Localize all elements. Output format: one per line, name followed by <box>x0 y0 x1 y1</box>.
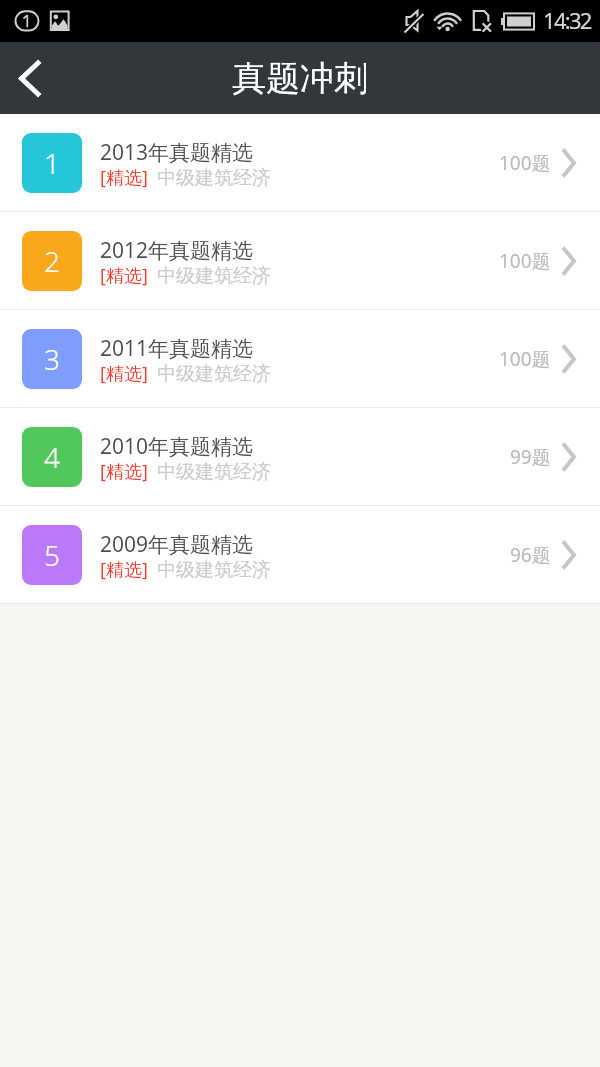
staticText: 2011年真题精选 <box>100 334 254 363</box>
staticText: 100题 <box>499 248 551 274</box>
staticText: 1 <box>44 144 60 182</box>
button[interactable]: 3 <box>0 310 600 407</box>
button[interactable]: 2 <box>0 212 600 309</box>
staticText: 14:32 <box>543 5 591 35</box>
staticText: 2009年真题精选 <box>100 530 254 559</box>
staticText: 2 <box>44 242 60 280</box>
staticText: 2012年真题精选 <box>100 236 254 265</box>
staticText: 2013年真题精选 <box>100 138 254 167</box>
staticText: 4 <box>44 438 60 476</box>
staticText: 5 <box>44 536 60 574</box>
button[interactable]: 5 <box>0 506 600 603</box>
staticText: [精选] <box>100 165 148 190</box>
staticText: 100题 <box>499 346 551 372</box>
staticText: [精选] <box>100 459 148 484</box>
staticText: 100题 <box>499 150 551 176</box>
staticText: 中级建筑经济 <box>157 460 271 484</box>
staticText: 中级建筑经济 <box>157 558 271 582</box>
staticText: 中级建筑经济 <box>157 264 271 288</box>
button[interactable]: 1 <box>0 114 600 211</box>
staticText: 中级建筑经济 <box>157 362 271 386</box>
staticText: 中级建筑经济 <box>157 166 271 190</box>
staticText: 96题 <box>510 542 551 568</box>
staticText: 99题 <box>510 444 551 470</box>
staticText: 2010年真题精选 <box>100 432 254 461</box>
button[interactable]: 4 <box>0 408 600 505</box>
staticText: [精选] <box>100 263 148 288</box>
staticText: 3 <box>44 340 60 378</box>
staticText: [精选] <box>100 361 148 386</box>
staticText: 真题冲刺 <box>232 57 368 100</box>
staticText: [精选] <box>100 557 148 582</box>
button[interactable]: Back <box>0 42 62 114</box>
